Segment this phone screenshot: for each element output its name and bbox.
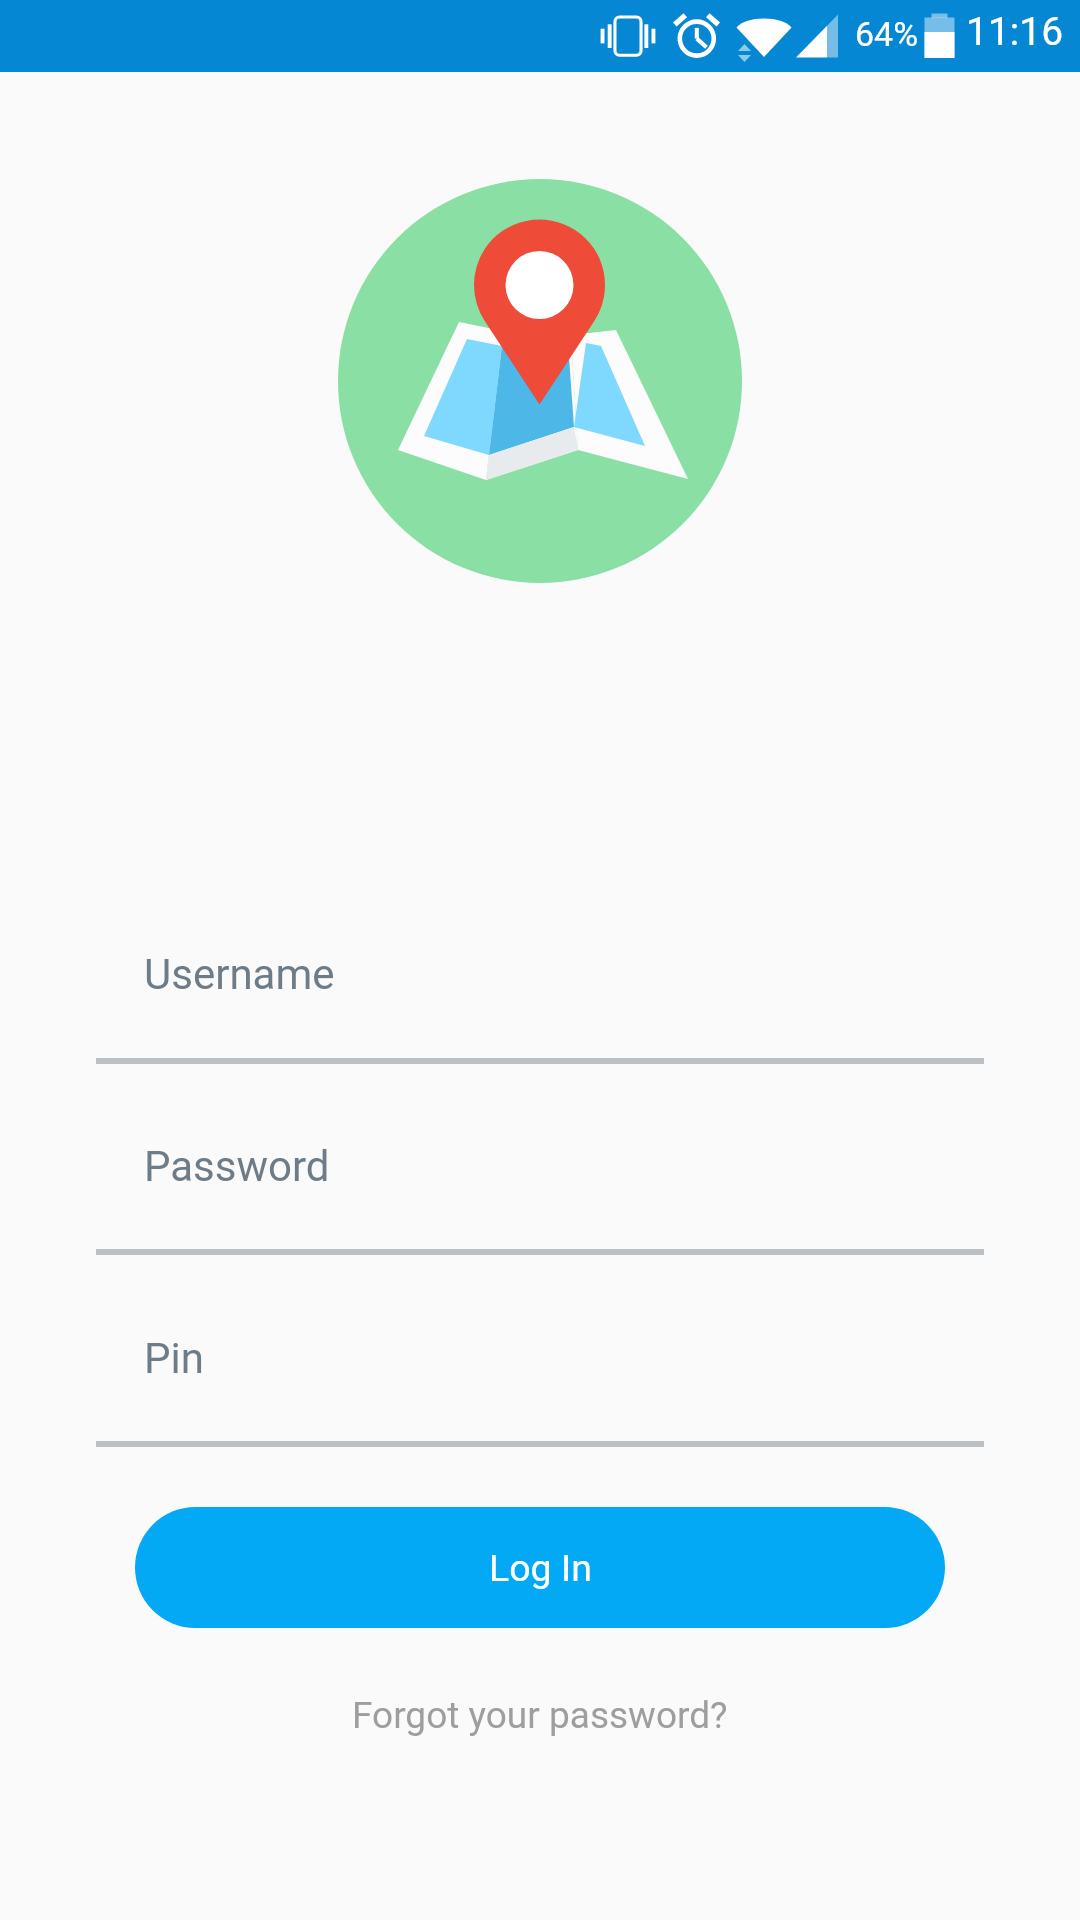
staticText: 11:16	[966, 9, 1064, 55]
button[interactable]: Username	[96, 931, 984, 1063]
staticText: Log In	[489, 1546, 592, 1590]
staticText: 64%	[855, 14, 919, 54]
staticText: Password	[144, 1142, 330, 1191]
button[interactable]: Log In	[135, 1507, 945, 1628]
button[interactable]: Forgot your password?	[0, 1670, 1080, 1760]
button[interactable]: Password	[96, 1123, 984, 1255]
button[interactable]: Pin	[96, 1315, 984, 1447]
staticText: Pin	[144, 1334, 204, 1383]
staticText: Username	[144, 950, 335, 999]
staticText: Forgot your password?	[352, 1694, 728, 1737]
